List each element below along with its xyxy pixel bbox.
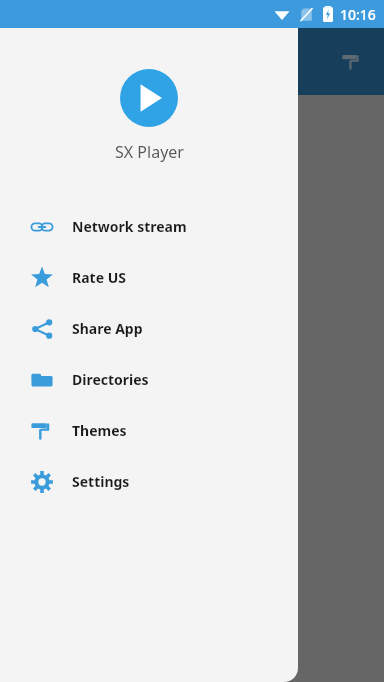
staticText: Settings [72, 472, 130, 491]
staticText: 10:16 [340, 5, 376, 24]
button[interactable]: Themes [0, 405, 298, 456]
staticText: Network stream [72, 217, 187, 236]
button[interactable]: Network stream [0, 201, 298, 252]
button[interactable]: Share App [0, 303, 298, 354]
button[interactable]: Directories [0, 354, 298, 405]
staticText: Themes [72, 421, 127, 440]
staticText: Share App [72, 319, 143, 338]
button[interactable]: Rate US [0, 252, 298, 303]
staticText: Directories [72, 370, 149, 389]
button[interactable]: Settings [0, 456, 298, 507]
staticText: SX Player [115, 141, 184, 163]
button[interactable]: Themes [330, 40, 374, 84]
staticText: Rate US [72, 268, 126, 287]
